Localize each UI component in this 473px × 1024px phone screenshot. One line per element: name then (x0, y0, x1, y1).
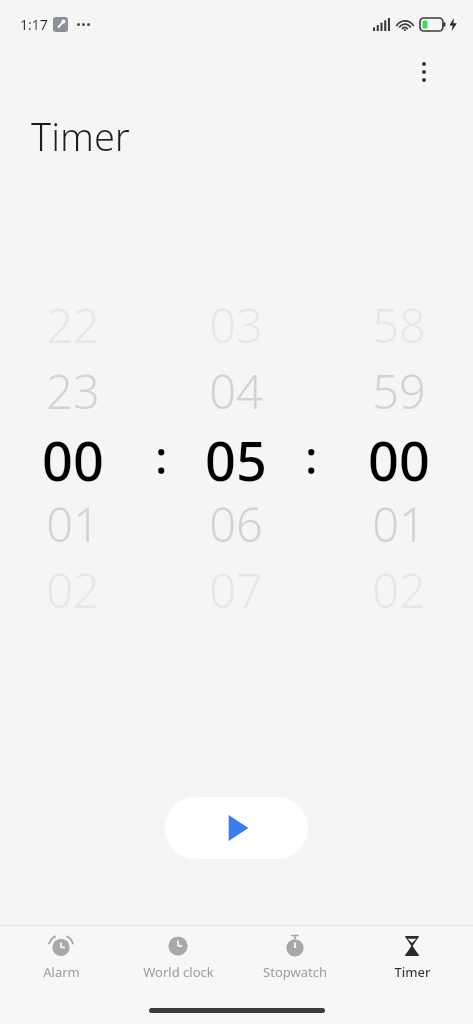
staticText: 01 (372, 492, 426, 550)
staticText: World clock (143, 963, 214, 981)
button[interactable]: Start timer (165, 797, 308, 859)
staticText: 58 (372, 293, 426, 351)
staticText: Timer (31, 110, 130, 162)
staticText: Timer (394, 963, 431, 981)
button[interactable]: 00 (0, 423, 473, 489)
staticText: 00 (42, 423, 104, 489)
staticText: 04 (209, 359, 263, 417)
staticText: 01 (46, 492, 100, 550)
button[interactable]: More options (400, 48, 448, 96)
staticText: Alarm (43, 963, 80, 981)
staticText: 05 (205, 423, 267, 489)
staticText: 07 (209, 558, 263, 616)
button[interactable]: 01 (0, 492, 473, 550)
staticText: 02 (46, 558, 100, 616)
staticText: 06 (209, 492, 263, 550)
staticText: 00 (368, 423, 430, 489)
button[interactable]: Stopwatch (239, 926, 351, 994)
staticText: 02 (372, 558, 426, 616)
staticText: : (305, 425, 318, 488)
button[interactable]: Timer (356, 926, 468, 994)
staticText: 59 (372, 359, 426, 417)
staticText: 1:17 (20, 15, 48, 34)
staticText: 23 (46, 359, 100, 417)
staticText: 03 (209, 293, 263, 351)
button[interactable]: 23 (0, 359, 473, 417)
staticText: 22 (46, 293, 100, 351)
staticText: : (155, 425, 168, 488)
button[interactable]: World clock (122, 926, 234, 994)
staticText: Stopwatch (263, 963, 327, 981)
button[interactable]: Alarm (5, 926, 117, 994)
